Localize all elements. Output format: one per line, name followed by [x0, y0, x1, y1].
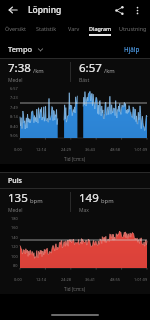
button[interactable]: 149	[79, 190, 142, 214]
staticText: 36:41	[85, 277, 95, 282]
staticText: 48:58	[110, 147, 120, 152]
button[interactable]: 7:38	[8, 60, 70, 84]
staticText: Medel	[8, 77, 23, 84]
staticText: Hjälp	[124, 45, 140, 53]
staticText: 7:38	[8, 60, 31, 76]
staticText: Medel	[8, 207, 23, 214]
staticText: Tid (t:m:s)	[64, 156, 86, 162]
staticText: 1:01:09	[134, 277, 148, 282]
staticText: 80	[13, 263, 18, 268]
button[interactable]: Share	[110, 1, 128, 19]
button[interactable]: Hjälp	[122, 43, 142, 55]
staticText: 0:00	[14, 147, 22, 152]
button[interactable]: Diagram	[85, 20, 115, 36]
staticText: 8:40	[10, 124, 18, 129]
staticText: 9:06	[10, 133, 18, 138]
staticText: Puls	[8, 176, 22, 186]
button[interactable]: Tempo	[8, 44, 44, 54]
staticText: Tempo	[8, 44, 33, 54]
staticText: Tid (t:m:s)	[64, 286, 86, 292]
staticText: bpm	[30, 197, 43, 205]
staticText: 7:49	[10, 105, 18, 110]
staticText: Diagram	[89, 25, 112, 32]
button[interactable]: Back	[4, 1, 22, 19]
staticText: Varv	[68, 25, 80, 32]
staticText: 6:57	[10, 86, 18, 91]
staticText: bpm	[101, 197, 114, 205]
staticText: 36:43	[85, 147, 95, 152]
button[interactable]: Varv	[62, 20, 85, 36]
button[interactable]: Utrustning	[115, 20, 150, 36]
staticText: Statistik	[36, 25, 57, 32]
button[interactable]: Översikt	[0, 20, 31, 36]
button[interactable]: More options	[128, 1, 146, 19]
staticText: 24:29	[61, 147, 71, 152]
staticText: Max	[79, 207, 89, 214]
staticText: Utrustning	[119, 25, 147, 32]
staticText: 149	[79, 190, 99, 206]
button[interactable]: Statistik	[31, 20, 62, 36]
staticText: 0:00	[14, 277, 22, 282]
button[interactable]: 135	[8, 190, 70, 214]
staticText: 7:23	[10, 95, 18, 100]
staticText: 12:14	[36, 277, 46, 282]
staticText: Översikt	[5, 25, 27, 32]
staticText: 180	[11, 216, 18, 221]
staticText: 12:14	[36, 147, 46, 152]
staticText: Bäst	[79, 77, 90, 84]
button[interactable]: 6:57	[79, 60, 142, 84]
staticText: Löpning	[28, 4, 62, 16]
staticText: 6:57	[79, 60, 102, 76]
staticText: 135	[8, 190, 28, 206]
staticText: 48:55	[110, 277, 120, 282]
staticText: 160	[11, 225, 18, 230]
staticText: 24:28	[61, 277, 71, 282]
staticText: /km	[104, 67, 115, 75]
staticText: 120	[11, 244, 18, 249]
staticText: 1:01:09	[134, 147, 148, 152]
staticText: /km	[33, 67, 44, 75]
staticText: 140	[11, 235, 18, 240]
staticText: 8:14	[10, 114, 18, 119]
staticText: 100	[11, 254, 18, 259]
